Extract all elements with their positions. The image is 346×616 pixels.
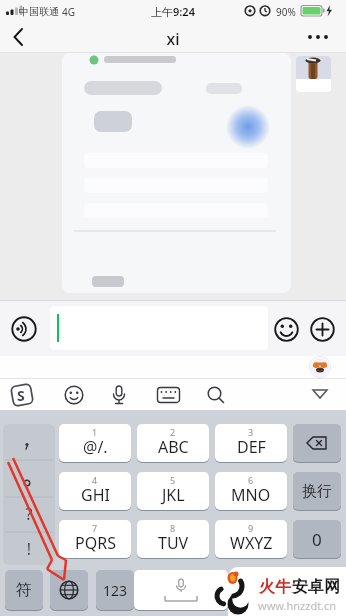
staticText: MNO: [231, 484, 271, 506]
staticText: @/.: [83, 436, 108, 458]
staticText: GHI: [81, 484, 110, 506]
button[interactable]: [302, 26, 338, 48]
button[interactable]: 6: [215, 472, 287, 510]
button[interactable]: [10, 315, 38, 343]
staticText: 123: [103, 581, 128, 600]
staticText: DEF: [237, 436, 266, 458]
staticText: 6: [248, 474, 254, 486]
staticText: WXYZ: [230, 532, 273, 554]
staticText: 安卓网: [292, 577, 340, 597]
button[interactable]: 5: [137, 472, 209, 510]
button[interactable]: [109, 384, 129, 406]
button[interactable]: [274, 317, 299, 342]
button[interactable]: [4, 24, 34, 50]
staticText: 火牛: [259, 577, 291, 597]
staticText: 7: [92, 522, 98, 534]
staticText: xi: [0, 28, 346, 50]
staticText: ABC: [158, 436, 189, 458]
staticText: 4: [92, 474, 98, 486]
staticText: 换行: [302, 482, 332, 501]
button[interactable]: [310, 386, 331, 402]
button[interactable]: 8: [137, 520, 209, 558]
staticText: 上午9:24: [0, 4, 346, 19]
staticText: 2: [170, 426, 176, 438]
button[interactable]: 9: [215, 520, 287, 558]
button[interactable]: 123: [96, 570, 134, 610]
button[interactable]: [50, 570, 88, 610]
button[interactable]: [293, 424, 341, 462]
button[interactable]: 1: [59, 424, 131, 462]
button[interactable]: [156, 386, 181, 404]
button[interactable]: [206, 385, 226, 405]
button[interactable]: 3: [215, 424, 287, 462]
button[interactable]: 0: [293, 520, 341, 558]
staticText: 中国联通: [19, 5, 59, 18]
staticText: ?: [3, 503, 55, 525]
button[interactable]: [293, 570, 341, 610]
button[interactable]: 换行: [293, 472, 341, 510]
button[interactable]: [310, 317, 335, 342]
staticText: 0: [312, 528, 322, 551]
staticText: 4G: [62, 5, 75, 19]
staticText: PQRS: [75, 532, 116, 554]
staticText: 5: [170, 474, 176, 486]
button[interactable]: [134, 570, 228, 610]
staticText: 符: [16, 580, 32, 600]
button[interactable]: 7: [59, 520, 131, 558]
staticText: www.hnzzdt.cn: [258, 598, 337, 613]
staticText: JKL: [162, 484, 185, 506]
staticText: 8: [170, 522, 176, 534]
button[interactable]: S: [10, 383, 34, 407]
button[interactable]: 2: [137, 424, 209, 462]
staticText: 9: [248, 522, 254, 534]
staticText: TUV: [158, 532, 189, 554]
button[interactable]: [50, 306, 268, 350]
button[interactable]: 4: [59, 472, 131, 510]
staticText: 1: [92, 426, 98, 438]
staticText: 3: [248, 426, 254, 438]
button[interactable]: [64, 385, 84, 405]
staticText: !: [3, 538, 55, 560]
staticText: 90%: [276, 5, 296, 19]
button[interactable]: 符: [5, 570, 43, 610]
staticText: S: [17, 386, 25, 405]
